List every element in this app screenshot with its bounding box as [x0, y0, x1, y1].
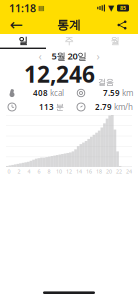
staticText: 24 [126, 168, 132, 175]
staticText: ▼ [105, 3, 117, 13]
staticText: 일 [18, 35, 27, 47]
staticText: ← [9, 16, 22, 34]
button[interactable]: Previous day [33, 50, 47, 62]
staticText: 걸음 [98, 77, 114, 87]
staticText: 7.59 [103, 88, 120, 98]
button[interactable]: Back [3, 16, 29, 34]
staticText: 85 [120, 4, 126, 12]
staticText: 월 [110, 35, 119, 47]
staticText: 4 [27, 168, 30, 175]
staticText: km [120, 88, 133, 98]
staticText: ▤ [36, 4, 44, 12]
staticText: 6 [37, 168, 40, 175]
staticText: km/h [112, 102, 133, 112]
staticText: 12 [66, 168, 72, 175]
staticText: 2.79 [95, 102, 112, 112]
button[interactable]: 일 [0, 34, 46, 49]
staticText: 11:18 [9, 1, 36, 15]
staticText: 8 [47, 168, 50, 175]
staticText: 20 [106, 168, 112, 175]
button[interactable]: 주 [46, 34, 92, 49]
staticText: 408 [33, 88, 48, 98]
staticText: 분 [54, 102, 64, 112]
staticText: 22 [116, 168, 122, 175]
staticText: ‹ [38, 49, 41, 63]
button[interactable]: 월 [92, 34, 138, 49]
staticText: › [96, 49, 99, 63]
staticText: 14 [76, 168, 82, 175]
staticText: 16 [86, 168, 92, 175]
staticText: 주 [64, 35, 73, 47]
staticText: 0 [7, 168, 10, 175]
staticText: 통계 [57, 18, 81, 32]
staticText: kcal [48, 88, 64, 98]
staticText: 5월 20일 [51, 50, 86, 62]
staticText: 2 [17, 168, 20, 175]
button[interactable]: Next day [91, 50, 105, 62]
staticText: 10 [56, 168, 62, 175]
staticText: 18 [96, 168, 102, 175]
staticText: 12,246 [24, 59, 95, 89]
staticText: 113 [39, 102, 54, 112]
button[interactable]: Share [109, 16, 135, 34]
